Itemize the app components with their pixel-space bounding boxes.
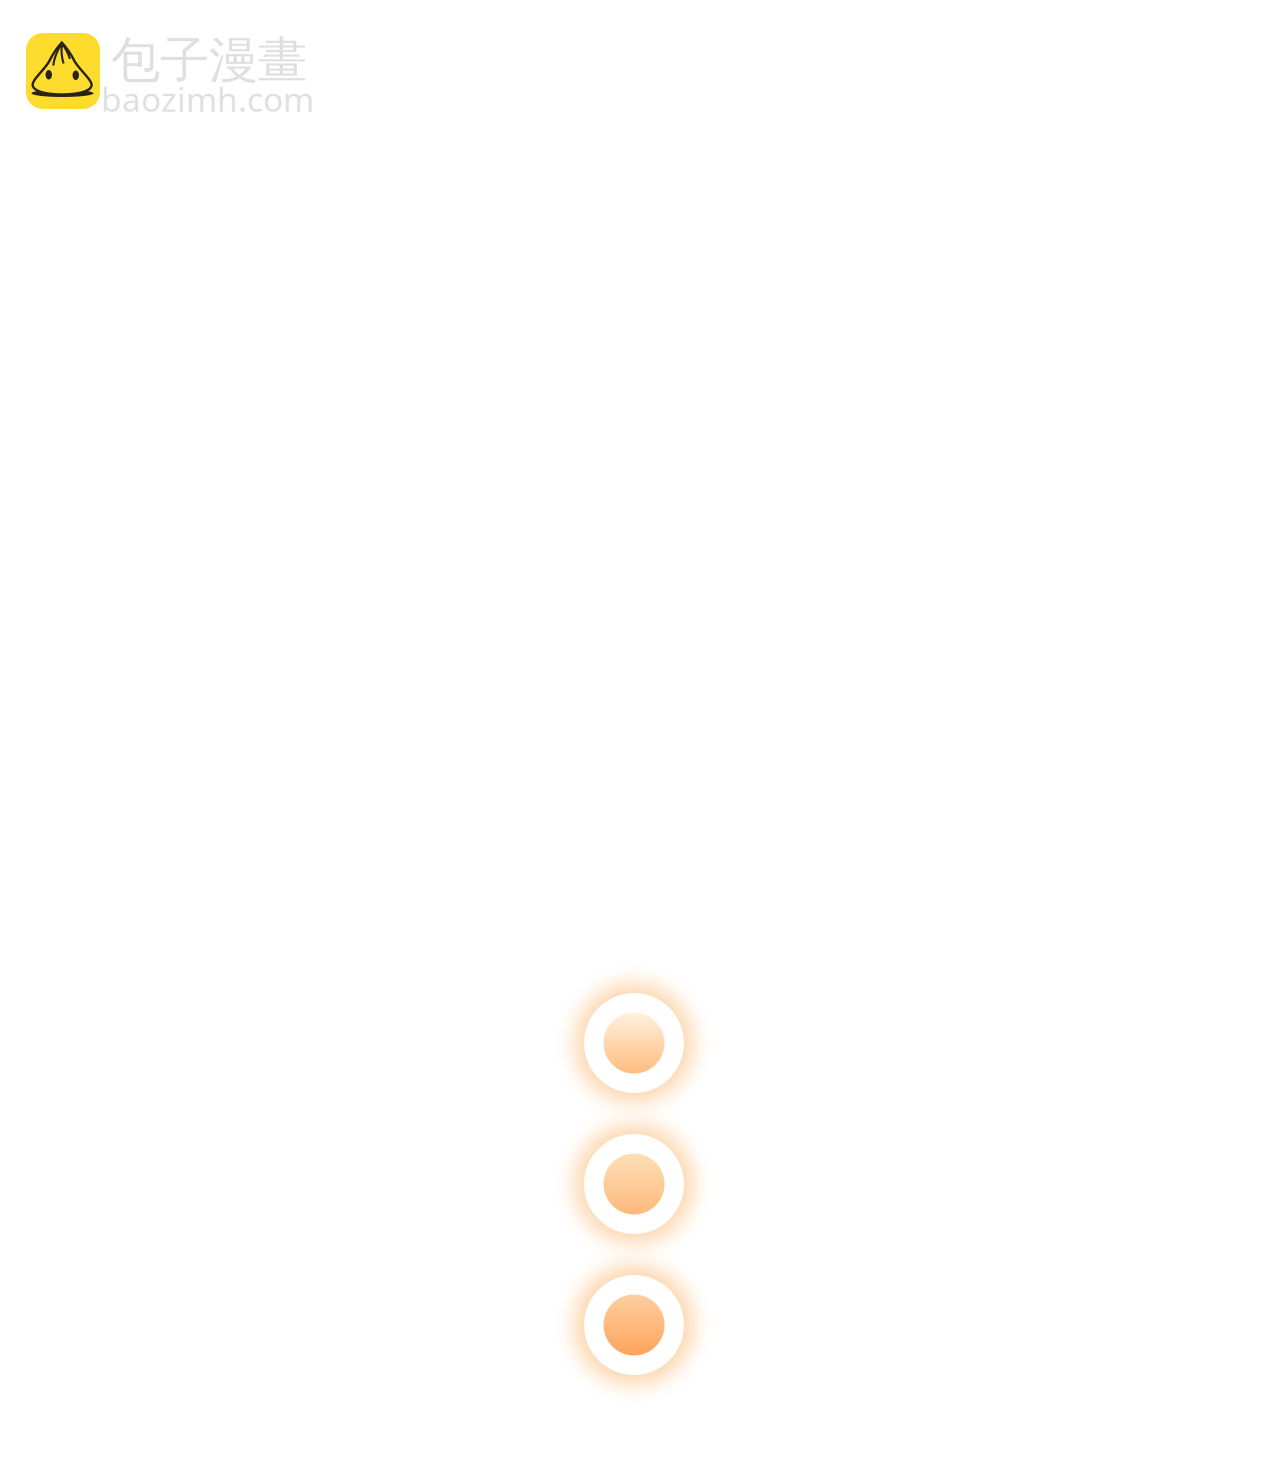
staticText: 包子漫畫	[111, 30, 307, 91]
button[interactable]: 包子漫畫 baozimh.com	[26, 33, 324, 138]
staticText: baozimh.com	[101, 77, 314, 121]
